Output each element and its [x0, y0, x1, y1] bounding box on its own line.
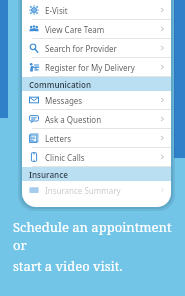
staticText: Letters: [45, 133, 72, 144]
button[interactable]: Clinic Calls: [22, 148, 171, 166]
staticText: Messages: [45, 95, 83, 106]
staticText: Schedule an appointment or: [13, 218, 177, 254]
button[interactable]: E-Visit: [22, 1, 171, 19]
button[interactable]: Register for My Delivery: [22, 58, 171, 76]
button[interactable]: View Care Team: [22, 20, 171, 38]
staticText: Clinic Calls: [45, 152, 85, 163]
staticText: Ask a Question: [45, 114, 102, 125]
staticText: Insurance Summary: [45, 185, 121, 196]
staticText: Register for My Delivery: [45, 62, 135, 73]
staticText: start a video visit.: [13, 257, 123, 275]
staticText: Search for Provider: [45, 43, 117, 54]
staticText: E-Visit: [45, 5, 68, 16]
button[interactable]: Ask a Question: [22, 110, 171, 128]
staticText: Insurance: [29, 169, 68, 180]
button[interactable]: Letters: [22, 129, 171, 147]
button[interactable]: Messages: [22, 91, 171, 109]
staticText: Communication: [29, 79, 92, 90]
button[interactable]: Search for Provider: [22, 39, 171, 57]
staticText: View Care Team: [45, 24, 105, 35]
